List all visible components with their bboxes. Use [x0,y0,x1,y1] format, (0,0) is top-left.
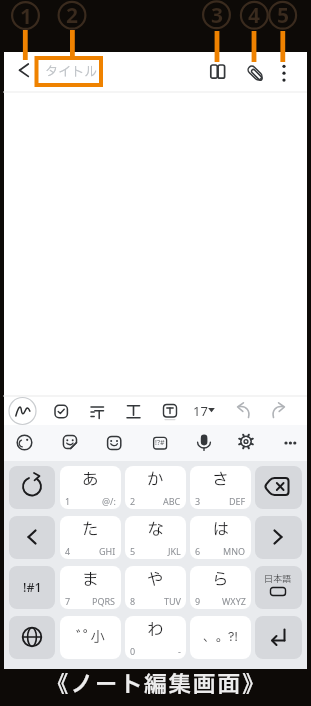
button[interactable] [255,466,302,509]
staticText: TUV [164,595,181,607]
staticText: JKL [168,545,181,557]
button[interactable]: さ [190,466,251,509]
button[interactable] [230,427,261,458]
button[interactable] [98,427,129,458]
button[interactable]: ﾞﾟ小 [60,616,121,659]
button[interactable] [144,427,175,458]
staticText: 日本語 [264,572,292,585]
button[interactable] [271,54,301,91]
button[interactable] [8,396,37,426]
staticText: ABC [163,495,181,507]
button[interactable]: あ [60,466,121,509]
button[interactable] [264,396,294,426]
button[interactable]: た [60,516,121,559]
staticText: さ [212,468,229,493]
staticText: か [147,468,164,493]
staticText: 3 [211,1,224,30]
staticText: 4 [248,1,261,30]
button[interactable] [82,396,112,426]
staticText: 1 [65,495,71,507]
staticText: は [212,518,229,543]
staticText: @/: [102,495,116,507]
staticText: ま [82,568,99,593]
button[interactable] [36,57,102,85]
button[interactable] [228,396,258,426]
staticText: !#1 [23,579,42,596]
staticText: WXYZ [222,595,246,607]
button[interactable] [9,516,55,559]
staticText: 5 [277,1,290,30]
staticText: わ [147,618,164,643]
staticText: GHI [99,545,116,557]
staticText: 3 [195,495,201,507]
button[interactable] [275,427,306,458]
button[interactable] [199,54,236,91]
staticText: 5 [130,545,136,557]
staticText: MNO [223,545,246,557]
staticText: - [178,645,181,657]
button[interactable]: や [125,566,186,609]
button[interactable]: な [125,516,186,559]
button[interactable] [9,566,55,609]
button[interactable] [6,53,42,89]
staticText: 、。?! [203,628,238,647]
staticText: タイトル [45,62,98,81]
staticText: 17 [193,402,208,420]
button[interactable] [54,427,85,458]
staticText: ﾞﾟ小 [76,627,105,649]
staticText: 0 [130,645,136,657]
button[interactable] [255,566,302,609]
button[interactable] [155,396,185,426]
staticText: 7 [65,595,71,607]
staticText: な [147,518,164,543]
staticText: PQRS [92,595,116,607]
button[interactable] [9,466,55,509]
staticText: 《ノート編集画面》 [46,668,267,702]
button[interactable] [9,616,55,659]
button[interactable] [46,396,76,426]
button[interactable]: か [125,466,186,509]
button[interactable] [188,427,219,458]
staticText: 9 [195,595,201,607]
staticText: た [82,518,99,543]
button[interactable] [118,396,148,426]
button[interactable] [190,396,221,426]
staticText: あ [82,468,99,493]
button[interactable]: 、。?! [190,616,251,659]
staticText: 1 [20,2,33,31]
staticText: DEF [229,495,246,507]
staticText: 4 [65,545,71,557]
button[interactable] [237,54,273,91]
button[interactable] [255,616,302,659]
button[interactable]: ら [190,566,251,609]
staticText: 2 [130,495,136,507]
button[interactable]: わ [125,616,186,659]
staticText: や [147,568,164,593]
staticText: 6 [195,545,201,557]
staticText: !?# [155,438,165,448]
button[interactable] [255,516,302,559]
button[interactable]: ま [60,566,121,609]
staticText: ら [212,568,229,593]
staticText: 8 [130,595,136,607]
button[interactable] [9,427,40,458]
button[interactable]: は [190,516,251,559]
staticText: 2 [66,1,79,30]
